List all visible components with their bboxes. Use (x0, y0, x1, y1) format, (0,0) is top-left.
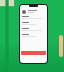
button[interactable]: Profile photo (20, 8, 47, 15)
button[interactable] (20, 15, 47, 21)
button[interactable]: Submit (21, 51, 46, 55)
other: Profile photo (22, 10, 26, 14)
button[interactable] (20, 33, 47, 39)
button[interactable] (20, 21, 47, 27)
button[interactable] (20, 27, 47, 33)
